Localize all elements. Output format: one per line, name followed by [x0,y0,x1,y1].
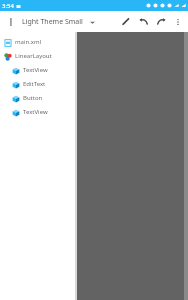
button[interactable]: TextView [0,63,77,77]
button[interactable]: Undo [136,14,151,29]
staticText: TextView [23,108,48,116]
button[interactable]: Edit [118,14,133,29]
staticText: TextView [23,66,48,74]
button[interactable]: More options [171,15,184,28]
button[interactable]: EditText [0,77,77,91]
staticText: 3:54 [2,2,14,10]
button[interactable]: Open navigation drawer [4,15,18,29]
button[interactable]: LinearLayout [0,49,77,63]
button[interactable]: main.xml [0,35,77,49]
button[interactable]: Redo [154,14,169,29]
button[interactable]: Change theme [87,17,97,27]
staticText: EditText [23,80,46,88]
button[interactable] [77,32,188,300]
button[interactable]: Button [0,91,77,105]
button[interactable]: TextView [0,105,77,119]
staticText: main.xml [15,38,42,46]
staticText: Light Theme Small [22,17,83,27]
staticText: LinearLayout [15,52,52,60]
staticText: Button [23,94,43,102]
